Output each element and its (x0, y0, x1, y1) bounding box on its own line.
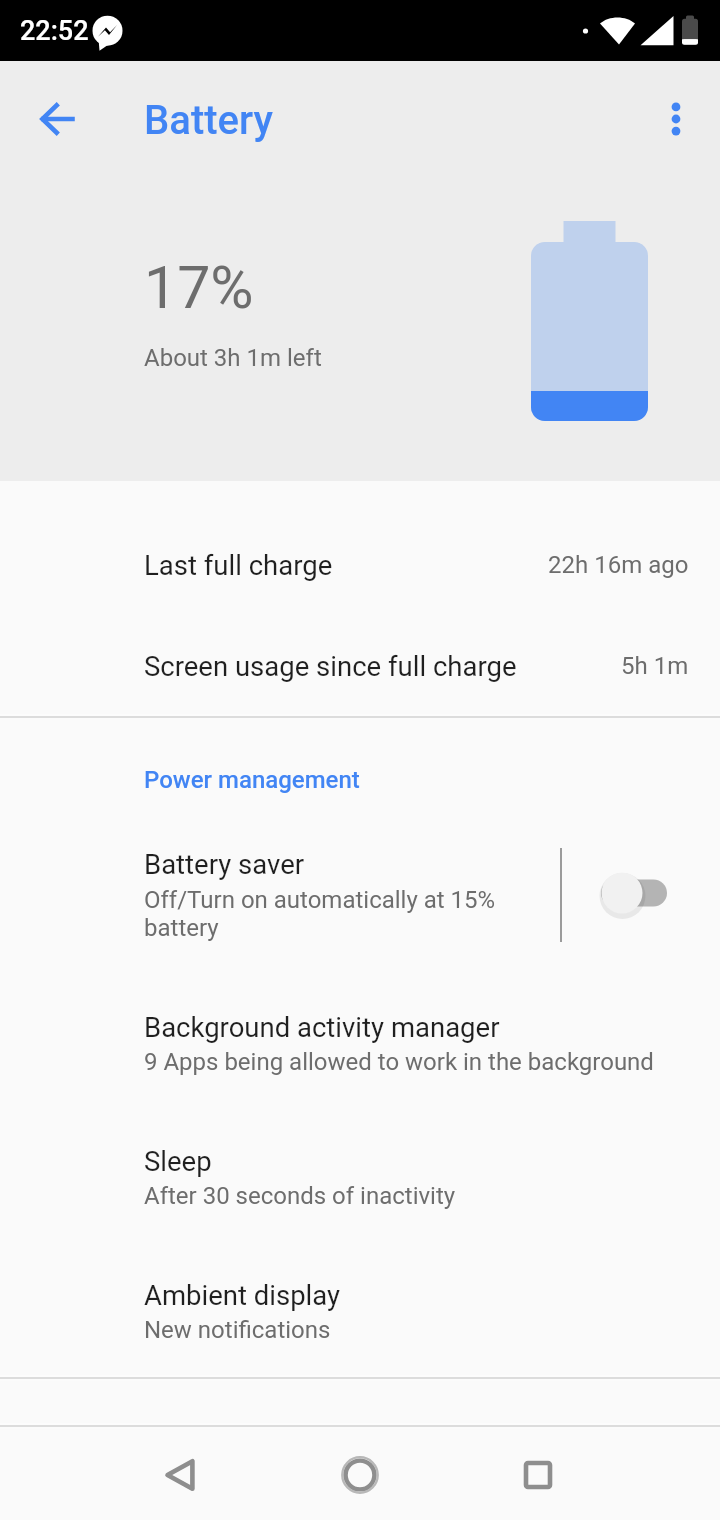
staticText: Off/Turn on automatically at 15% battery (144, 886, 524, 942)
button[interactable]: Last full charge (0, 514, 720, 615)
staticText: 17% (144, 253, 254, 322)
staticText: About 3h 1m left (144, 344, 322, 372)
staticText: Battery (144, 97, 273, 144)
button[interactable]: Home (324, 1439, 396, 1511)
button[interactable]: Navigate up (21, 83, 93, 155)
staticText: 22h 16m ago (548, 551, 689, 579)
staticText: Sleep (144, 1145, 212, 1177)
button[interactable]: Recent apps (502, 1439, 574, 1511)
button[interactable]: Sleep (0, 1135, 720, 1269)
staticText: After 30 seconds of inactivity (144, 1182, 456, 1210)
button[interactable]: Battery saver (0, 828, 720, 980)
button[interactable]: Background activity manager (0, 1001, 720, 1135)
staticText: Background activity manager (144, 1011, 500, 1043)
staticText: Screen usage since full charge (144, 650, 517, 682)
staticText: New notifications (144, 1316, 331, 1344)
staticText: Last full charge (144, 549, 333, 581)
staticText: 9 Apps being allowed to work in the back… (144, 1048, 654, 1076)
button[interactable]: Screen usage since full charge (0, 615, 720, 716)
button[interactable]: Ambient display (0, 1269, 720, 1403)
staticText: 22:52 (20, 15, 89, 47)
button[interactable]: Back (145, 1439, 217, 1511)
button[interactable]: More options (640, 83, 712, 155)
staticText: 5h 1m (621, 652, 689, 680)
staticText: Ambient display (144, 1279, 341, 1311)
staticText: Power management (144, 766, 360, 794)
button[interactable]: Battery saver toggle (576, 828, 700, 980)
staticText: Battery saver (144, 848, 305, 880)
